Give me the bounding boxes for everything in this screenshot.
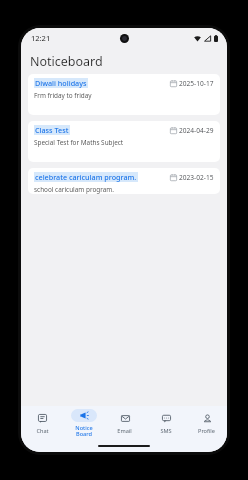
other: Chat (38, 414, 47, 423)
staticText: SMS (160, 427, 172, 435)
staticText: Notice Board (75, 424, 93, 438)
staticText: Chat (36, 427, 49, 435)
button[interactable]: SMS (145, 406, 186, 440)
staticText: 2024-04-29 (179, 126, 214, 135)
button[interactable]: celebrate cariculam program. (28, 168, 220, 194)
staticText: 2023-02-15 (179, 173, 214, 182)
other: SMS (162, 414, 171, 423)
other: Notice Board (80, 411, 89, 420)
staticText: Noticeboard (30, 53, 103, 70)
other: Email (121, 414, 130, 423)
staticText: Frm friday to friday (34, 91, 92, 100)
staticText: school cariculam program. (34, 185, 114, 194)
staticText: Class Test (35, 125, 69, 135)
staticText: Diwali holidays (35, 78, 87, 88)
other: Profile (203, 414, 212, 423)
staticText: Special Test for Maths Subject (34, 138, 124, 147)
button[interactable]: Profile (186, 406, 227, 440)
staticText: 12:21 (31, 33, 51, 43)
staticText: Profile (198, 427, 215, 435)
staticText: 2025-10-17 (179, 79, 214, 88)
staticText: celebrate cariculam program. (35, 172, 137, 182)
button[interactable]: Class Test (28, 121, 220, 162)
staticText: Email (117, 427, 132, 435)
button[interactable]: Chat (21, 406, 63, 440)
button[interactable]: Diwali holidays (28, 74, 220, 115)
button[interactable]: Notice Board (63, 406, 104, 440)
button[interactable]: Email (104, 406, 145, 440)
